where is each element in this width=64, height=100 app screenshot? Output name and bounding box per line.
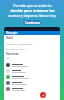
button[interactable]: Continuar (23, 20, 41, 25)
staticText: Continuar (25, 21, 40, 25)
staticText: al nuevo sistema (6, 47, 25, 50)
staticText: Hoy (6, 57, 11, 60)
staticText: accesos y dejarnos llamar hoy (8, 13, 56, 18)
button[interactable]: New message (40, 92, 46, 98)
button[interactable] (4, 62, 60, 68)
button[interactable] (4, 68, 60, 74)
button[interactable] (4, 74, 60, 80)
button[interactable] (4, 80, 60, 86)
staticText: Permite que se active tu (13, 3, 52, 8)
staticText: Hola! (6, 36, 13, 40)
staticText: Recientes (6, 52, 19, 56)
staticText: checkin para restaurar tus (10, 8, 55, 13)
button[interactable] (4, 86, 60, 92)
staticText: Te damos la bienvenida (6, 42, 33, 45)
staticText: Mensajes (6, 31, 18, 35)
